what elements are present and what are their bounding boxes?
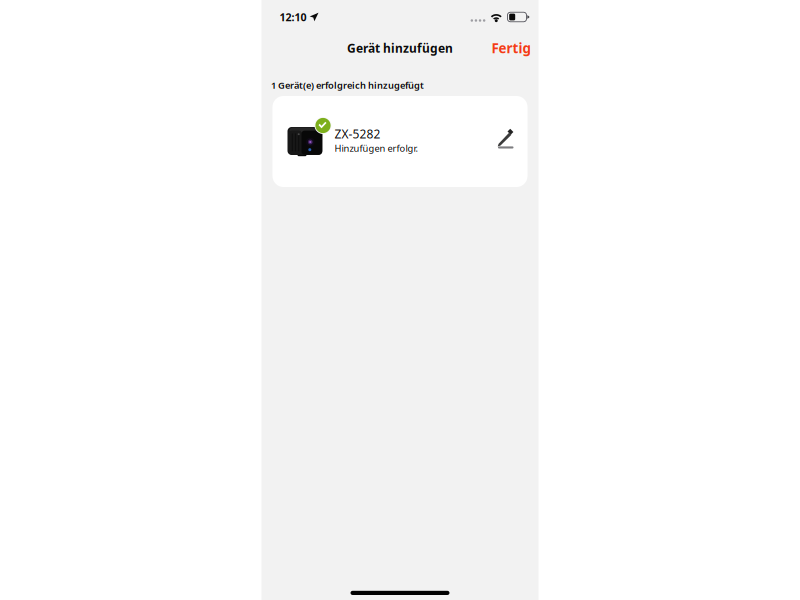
staticText: ZX-5282 [334, 126, 380, 142]
button[interactable]: Fertig [486, 34, 535, 62]
staticText: 12:10 [279, 10, 306, 24]
button[interactable]: ZX-5282 [272, 96, 527, 187]
staticText: Fertig [491, 39, 530, 57]
staticText: 1 Gerät(e) erfolgreich hinzugefügt [271, 79, 424, 91]
button[interactable]: Gerät umbenennen [496, 128, 516, 151]
staticText: Gerät hinzufügen [347, 40, 453, 56]
staticText: Hinzufügen erfolgr. [334, 142, 418, 154]
